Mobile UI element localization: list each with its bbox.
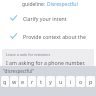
button[interactable]: e	[19, 76, 27, 87]
staticText: Clarify your intent	[23, 15, 67, 22]
staticText: p	[89, 78, 93, 85]
staticText: I am asking for a phone number. Not disr…	[6, 59, 91, 73]
button[interactable]: Provide context about the topic	[0, 30, 96, 42]
button[interactable]: Disrespectful	[47, 1, 78, 8]
button[interactable]: w	[10, 76, 18, 87]
button[interactable]: t	[37, 76, 45, 87]
button[interactable]: p	[86, 76, 95, 87]
button[interactable]: y	[46, 76, 55, 87]
staticText: r	[31, 78, 34, 85]
button[interactable]: r	[28, 76, 36, 87]
staticText: w	[12, 78, 17, 85]
staticText: u	[59, 78, 63, 85]
staticText: guideline:	[22, 1, 47, 8]
button[interactable]: q	[1, 76, 9, 87]
staticText: t	[40, 78, 42, 85]
staticText: q	[3, 78, 7, 85]
staticText: Leave a note for reviewers	[6, 52, 51, 57]
button[interactable]: o	[76, 76, 85, 87]
button[interactable]: Leave a note for reviewers	[2, 49, 94, 73]
staticText: y	[49, 78, 52, 85]
staticText: i	[70, 78, 72, 85]
button[interactable]: i	[66, 76, 75, 87]
staticText: Provide context about the topic	[23, 33, 96, 40]
staticText: "disrespectful"	[3, 68, 35, 74]
button[interactable]: u	[56, 76, 65, 87]
staticText: o	[79, 78, 83, 85]
button[interactable]: Clarify your intent	[0, 12, 96, 24]
button[interactable]: "disrespectful"	[3, 68, 35, 74]
staticText: e	[21, 78, 25, 85]
